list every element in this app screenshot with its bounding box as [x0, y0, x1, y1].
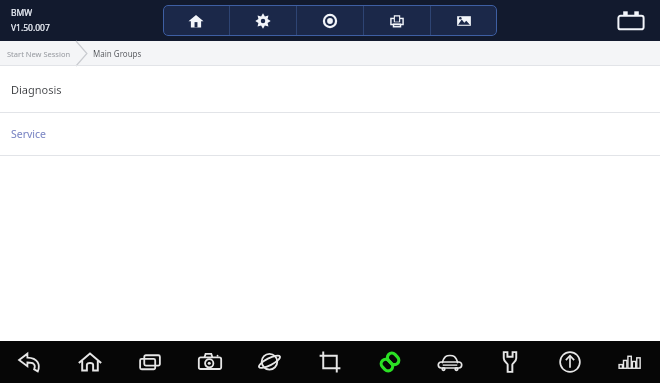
button[interactable]: Data graph — [600, 341, 660, 383]
button[interactable]: Main Groups — [93, 48, 142, 59]
button[interactable]: Vehicle — [420, 341, 480, 383]
button[interactable]: Record — [297, 5, 363, 36]
button[interactable]: Recent apps — [120, 341, 180, 383]
button[interactable]: Screenshot — [431, 5, 497, 36]
button[interactable]: Diagnosis — [0, 66, 660, 113]
staticText: Service — [11, 127, 47, 141]
button[interactable]: Settings — [230, 5, 296, 36]
button[interactable]: Service — [0, 113, 660, 156]
button[interactable]: Start New Session — [7, 49, 71, 59]
staticText: V1.50.007 — [11, 22, 50, 34]
staticText: BMW — [11, 7, 33, 19]
button[interactable]: Update — [540, 341, 600, 383]
button[interactable]: Print — [364, 5, 430, 36]
button[interactable]: Home — [60, 341, 120, 383]
button[interactable]: Service tools — [480, 341, 540, 383]
staticText: Diagnosis — [11, 82, 62, 97]
button[interactable]: Home — [163, 5, 229, 36]
button[interactable]: Back — [0, 341, 60, 383]
button[interactable]: Crop screenshot — [300, 341, 360, 383]
button[interactable]: Battery voltage 12.5 volts — [614, 8, 648, 34]
button[interactable]: Browser — [240, 341, 300, 383]
button[interactable]: Camera — [180, 341, 240, 383]
button[interactable]: Connection status — [360, 341, 420, 383]
